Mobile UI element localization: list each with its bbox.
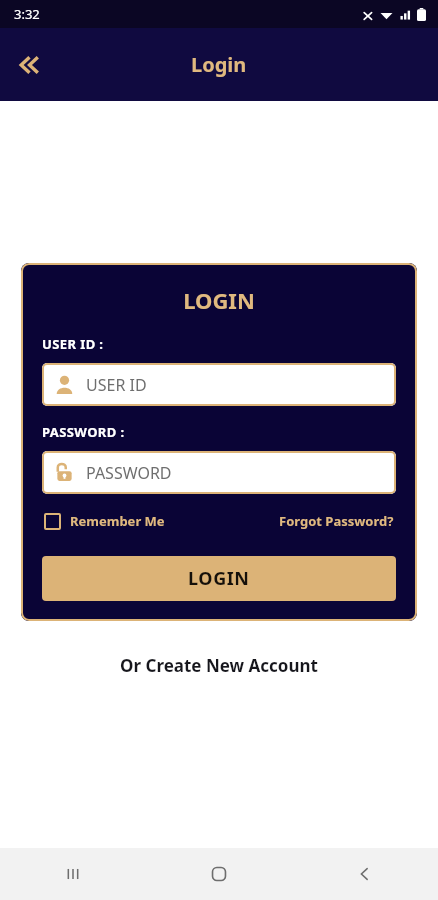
staticText: Remember Me bbox=[70, 512, 165, 530]
button[interactable]: Recent apps bbox=[0, 848, 146, 900]
staticText: PASSWORD : bbox=[42, 423, 125, 441]
staticText: LOGIN bbox=[42, 285, 396, 315]
staticText: USER ID bbox=[86, 374, 147, 396]
staticText: Login bbox=[191, 51, 247, 78]
button[interactable]: Home bbox=[146, 848, 292, 900]
button[interactable]: Remember Me bbox=[42, 508, 167, 534]
button[interactable]: LOGIN bbox=[42, 556, 396, 601]
button[interactable]: USER ID bbox=[42, 363, 396, 406]
button[interactable]: Or Create New Account bbox=[110, 650, 328, 681]
staticText: LOGIN bbox=[188, 566, 250, 591]
button[interactable]: PASSWORD bbox=[42, 451, 396, 494]
staticText: 3:32 bbox=[14, 5, 40, 23]
button[interactable]: Forgot Password? bbox=[277, 508, 396, 534]
staticText: USER ID : bbox=[42, 335, 104, 353]
staticText: Forgot Password? bbox=[279, 512, 394, 530]
button[interactable]: Back bbox=[6, 41, 54, 89]
button[interactable]: Back bbox=[292, 848, 438, 900]
staticText: Or Create New Account bbox=[120, 654, 318, 677]
staticText: PASSWORD bbox=[86, 462, 172, 484]
